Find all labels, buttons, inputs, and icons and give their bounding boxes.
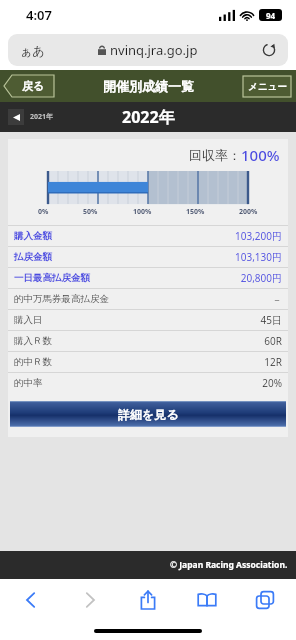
button[interactable]: 詳細を見る xyxy=(10,401,286,427)
button[interactable]: メニュー xyxy=(243,76,291,97)
staticText: 12R xyxy=(264,355,282,369)
staticText: 103,130円 xyxy=(235,250,282,264)
button[interactable]: Tabs xyxy=(248,583,282,617)
button[interactable]: 一日最高払戻金額 xyxy=(8,267,288,288)
staticText: 45日 xyxy=(260,313,282,327)
staticText: 100% xyxy=(133,207,152,217)
button[interactable]: 払戻金額 xyxy=(8,246,288,267)
staticText: 2021年 xyxy=(30,112,54,122)
button[interactable]: ぁあ xyxy=(8,34,288,66)
staticText: 的中Ｒ数 xyxy=(14,356,52,368)
button[interactable]: Bookmarks xyxy=(190,583,224,617)
staticText: 103,200円 xyxy=(235,229,282,243)
staticText: － xyxy=(272,293,282,306)
staticText: 購入金額 xyxy=(14,230,52,242)
staticText: 的中万馬券最高払戻金 xyxy=(14,293,109,305)
button[interactable]: 購入日 xyxy=(8,309,288,330)
staticText: 購入Ｒ数 xyxy=(14,335,52,347)
staticText: メニュー xyxy=(248,81,287,93)
button[interactable]: 2021年 xyxy=(8,109,54,125)
button[interactable]: Reload xyxy=(260,41,278,59)
button[interactable]: Back xyxy=(14,583,48,617)
staticText: 払戻金額 xyxy=(14,251,52,263)
button[interactable]: 的中万馬券最高払戻金 xyxy=(8,288,288,309)
staticText: 回収率： xyxy=(189,147,241,163)
staticText: 20% xyxy=(262,376,282,390)
staticText: 100% xyxy=(241,145,280,165)
button[interactable]: 購入Ｒ数 xyxy=(8,330,288,351)
staticText: 60R xyxy=(264,334,282,348)
staticText: 戻る xyxy=(22,79,45,93)
button[interactable]: Share xyxy=(131,583,165,617)
staticText: nvinq.jra.go.jp xyxy=(110,41,198,59)
staticText: 200% xyxy=(239,207,258,217)
staticText: 購入日 xyxy=(14,314,43,326)
staticText: 2022年 xyxy=(122,106,175,128)
staticText: 94 xyxy=(266,10,276,21)
staticText: 的中率 xyxy=(14,377,43,389)
staticText: 0% xyxy=(38,207,49,217)
staticText: 50% xyxy=(83,207,98,217)
staticText: 4:07 xyxy=(26,6,52,24)
staticText: 20,800円 xyxy=(240,271,282,285)
button[interactable]: 的中率 xyxy=(8,372,288,393)
button[interactable]: 購入金額 xyxy=(8,225,288,246)
button[interactable]: 的中Ｒ数 xyxy=(8,351,288,372)
button[interactable]: 戻る xyxy=(4,75,54,97)
staticText: ぁあ xyxy=(20,43,45,58)
staticText: 150% xyxy=(186,207,205,217)
staticText: 詳細を見る xyxy=(118,407,179,422)
staticText: 一日最高払戻金額 xyxy=(14,272,90,284)
staticText: 開催別成績一覧 xyxy=(103,78,194,94)
staticText: © Japan Racing Association. xyxy=(170,559,288,571)
button[interactable]: Forward xyxy=(73,583,107,617)
